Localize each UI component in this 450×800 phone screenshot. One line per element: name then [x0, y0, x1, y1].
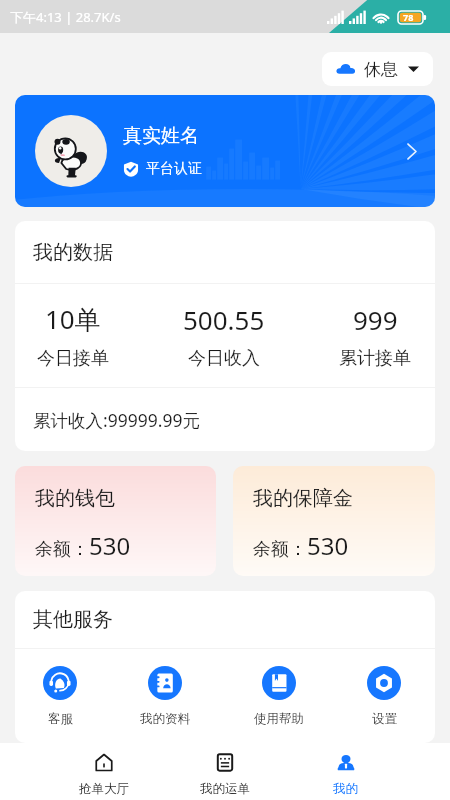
staticText: 抢单大厅: [79, 781, 129, 797]
button[interactable]: 我的保障金: [233, 466, 435, 576]
staticText: 客服: [48, 711, 73, 727]
staticText: 其他服务: [33, 607, 113, 632]
staticText: 我的资料: [140, 711, 190, 727]
staticText: 累计接单: [339, 347, 411, 370]
staticText: 累计收入:99999.99元: [33, 408, 200, 432]
button[interactable]: 设置: [367, 666, 401, 727]
staticText: 999: [353, 302, 398, 337]
other: Profile: [337, 753, 355, 772]
staticText: 我的运单: [200, 781, 250, 797]
staticText: 10单: [45, 301, 101, 337]
other: My orders: [216, 753, 234, 772]
staticText: 我的钱包: [35, 486, 115, 511]
staticText: 今日收入: [188, 347, 260, 370]
staticText: 我的数据: [33, 240, 113, 265]
staticText: 530: [307, 529, 349, 562]
button[interactable]: 我的钱包: [15, 466, 216, 576]
button[interactable]: My orders: [164, 743, 285, 800]
button[interactable]: Grab orders: [44, 743, 164, 800]
staticText: 使用帮助: [254, 711, 304, 727]
button[interactable]: 真实姓名: [15, 95, 435, 207]
button[interactable]: Status: [322, 52, 433, 86]
staticText: 我的: [333, 781, 358, 797]
staticText: 500.55: [183, 302, 265, 337]
staticText: 我的保障金: [253, 486, 353, 511]
staticText: 平台认证: [146, 160, 202, 178]
staticText: 今日接单: [37, 347, 109, 370]
other: Status: [336, 61, 356, 77]
button[interactable]: 客服: [43, 666, 77, 727]
other: Grab orders: [95, 753, 113, 772]
button[interactable]: 使用帮助: [254, 666, 304, 727]
staticText: 余额：: [253, 538, 307, 561]
button[interactable]: 我的资料: [140, 666, 190, 727]
staticText: 休息: [364, 59, 398, 80]
staticText: 设置: [372, 711, 397, 727]
staticText: 真实姓名: [123, 124, 199, 148]
staticText: 下午4:13 | 28.7K/s: [10, 8, 121, 26]
staticText: 530: [89, 529, 131, 562]
staticText: 78: [403, 11, 414, 23]
staticText: 余额：: [35, 538, 89, 561]
button[interactable]: Profile: [285, 743, 406, 800]
